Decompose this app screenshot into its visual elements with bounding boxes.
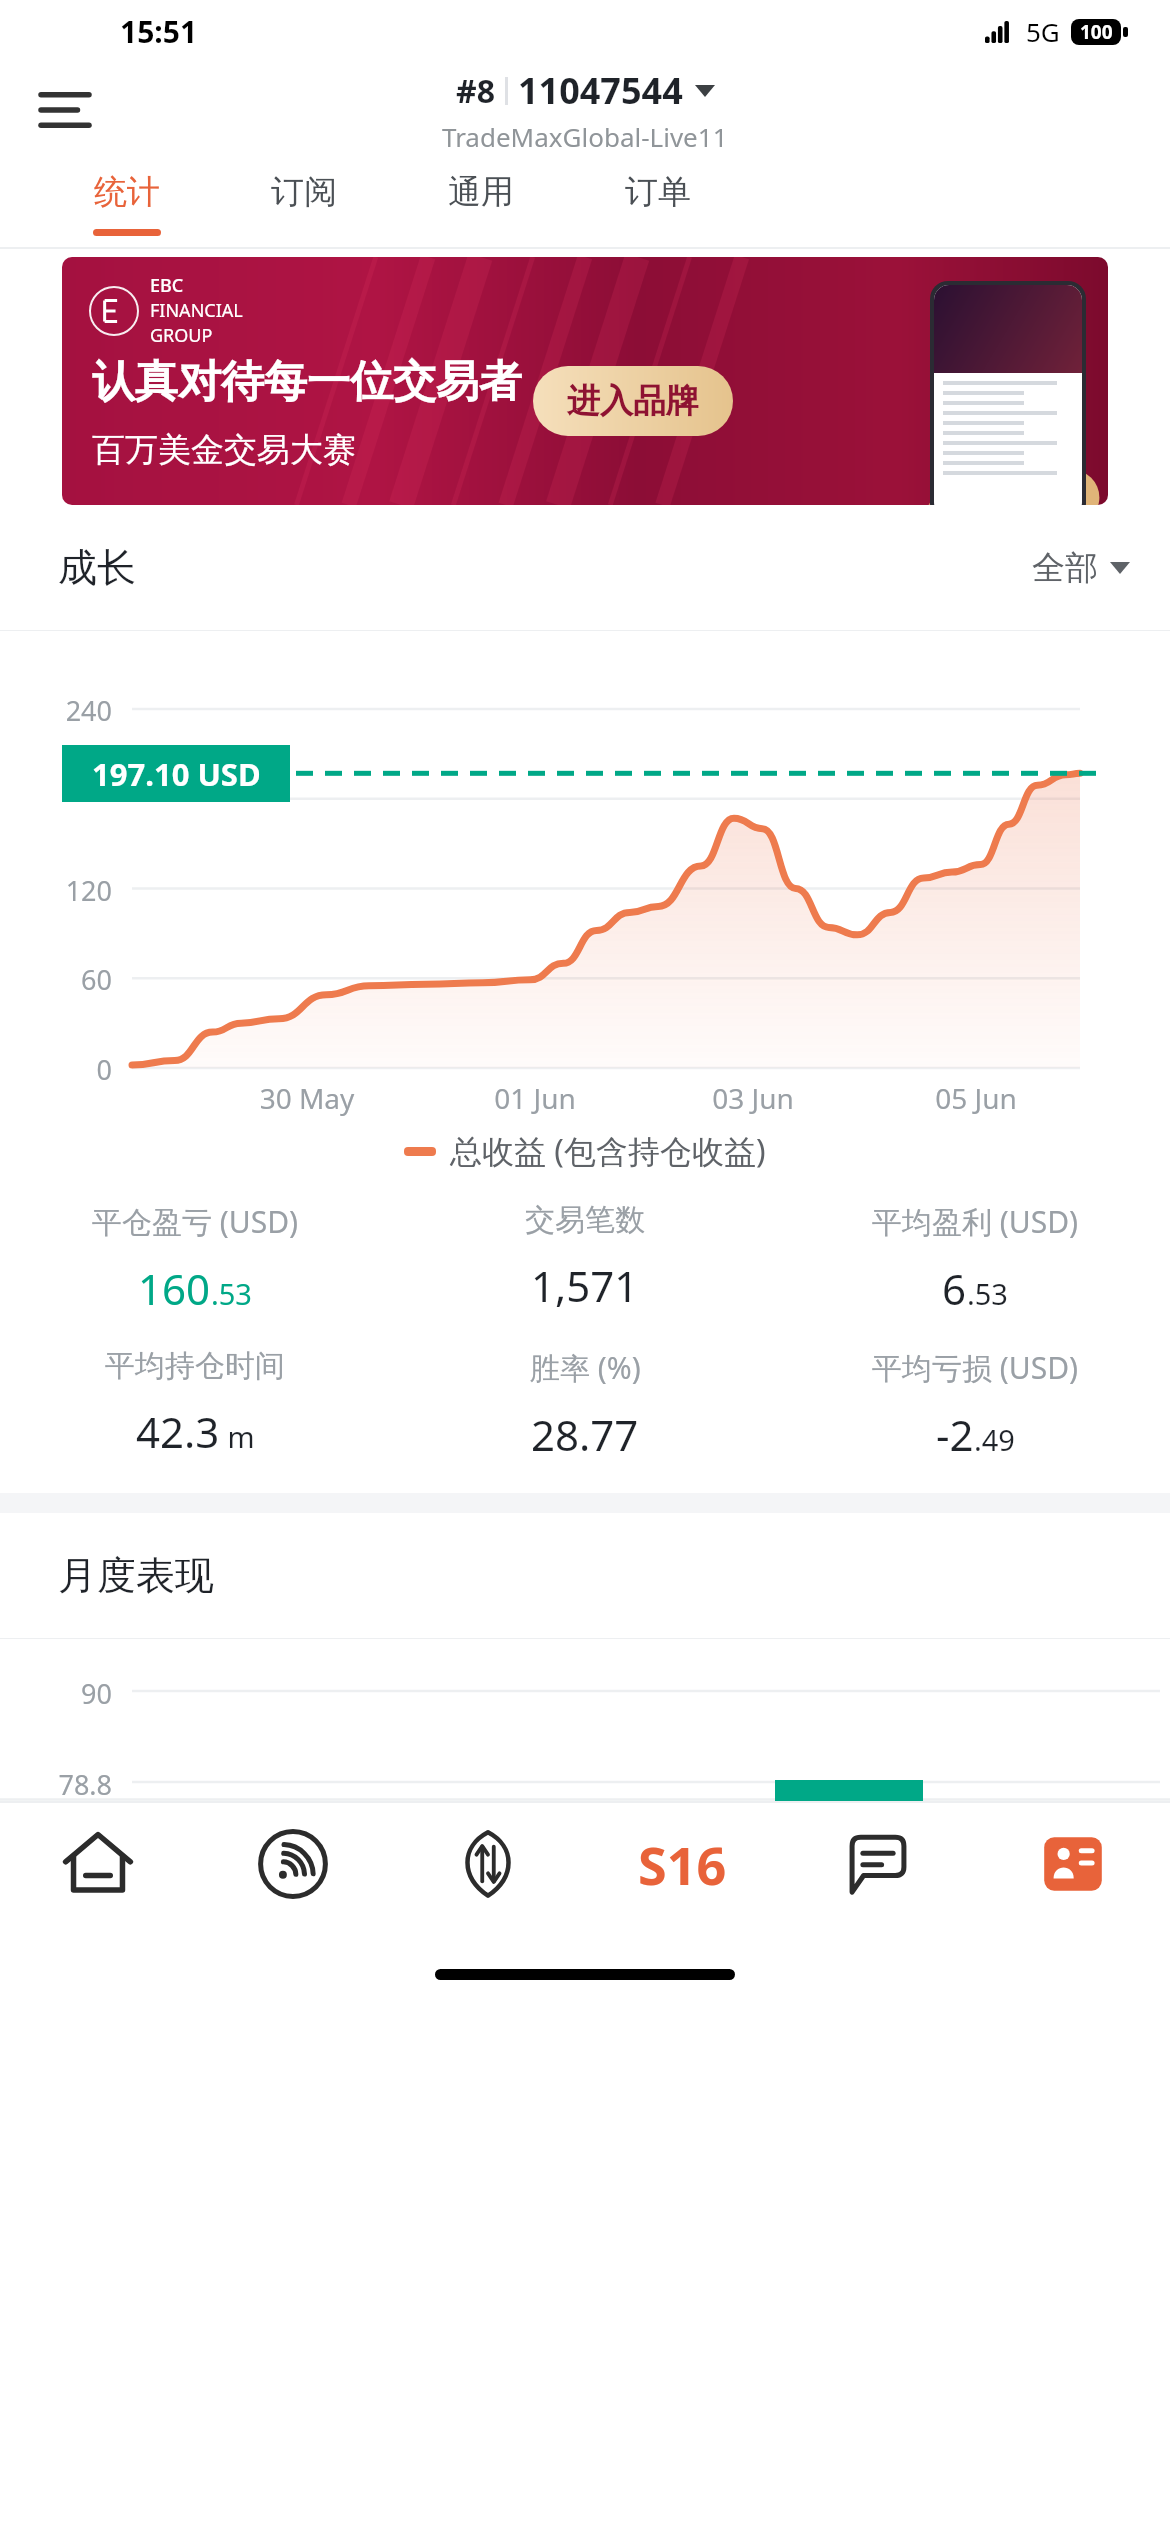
button[interactable]: 全部 <box>1032 547 1130 589</box>
staticText: 160 <box>138 1260 211 1317</box>
button[interactable]: 平均盈利 (USD) <box>780 1201 1170 1317</box>
staticText: 订单 <box>625 171 691 213</box>
button[interactable]: 订单 <box>569 157 746 249</box>
staticText: 30 May <box>237 1079 377 1117</box>
staticText: 03 Jun <box>683 1079 823 1117</box>
staticText: 全部 <box>1032 547 1098 589</box>
staticText: 平均持仓时间 <box>105 1347 285 1385</box>
staticText: GROUP <box>150 323 213 348</box>
staticText: 认真对待每一位交易者 <box>92 355 522 409</box>
button[interactable]: Menu <box>30 75 100 145</box>
button[interactable]: 平仓盈亏 (USD) <box>0 1201 390 1317</box>
staticText: 进入品牌 <box>567 380 699 422</box>
staticText: 05 Jun <box>906 1079 1046 1117</box>
staticText: 平均亏损 (USD) <box>872 1347 1079 1388</box>
staticText: 交易笔数 <box>525 1201 645 1239</box>
button[interactable]: 通用 <box>392 157 569 249</box>
button[interactable]: Home <box>0 1801 195 1951</box>
button[interactable]: 交易笔数 <box>390 1201 780 1314</box>
staticText: 01 Jun <box>465 1079 605 1117</box>
button[interactable]: 平均持仓时间 <box>0 1347 390 1460</box>
staticText: .53 <box>967 1274 1008 1313</box>
staticText: 平仓盈亏 (USD) <box>92 1201 299 1242</box>
staticText: FINANCIAL <box>150 298 243 323</box>
button[interactable]: 进入品牌 <box>533 366 733 436</box>
button[interactable]: 订阅 <box>215 157 392 249</box>
staticText: 120 <box>0 872 112 909</box>
staticText: 通用 <box>448 171 514 213</box>
button[interactable]: S16 <box>585 1801 780 1951</box>
staticText: EBC <box>150 273 184 298</box>
staticText: 11047544 <box>518 66 683 115</box>
staticText: 42.3 <box>136 1403 220 1460</box>
staticText: 胜率 (%) <box>530 1347 641 1388</box>
staticText: 月度表现 <box>58 1551 214 1600</box>
staticText: 240 <box>0 692 112 729</box>
staticText: m <box>220 1417 255 1456</box>
button[interactable]: Trade <box>390 1801 585 1951</box>
button[interactable]: Messages <box>780 1801 975 1951</box>
staticText: TradeMaxGlobal-Live11 <box>442 119 728 154</box>
staticText: 订阅 <box>271 171 337 213</box>
staticText: 5G <box>1026 14 1060 49</box>
staticText: 100 <box>1080 19 1113 45</box>
button[interactable]: #8 <box>442 66 728 154</box>
button[interactable]: 统计 <box>38 157 215 249</box>
staticText: .49 <box>974 1420 1015 1459</box>
staticText: 平均盈利 (USD) <box>872 1201 1079 1242</box>
staticText: S16 <box>638 1829 727 1900</box>
button[interactable]: EBC <box>62 257 1108 505</box>
staticText: 统计 <box>94 171 160 213</box>
staticText: 90 <box>0 1675 112 1712</box>
staticText: 1,571 <box>531 1257 639 1314</box>
staticText: 28.77 <box>531 1406 639 1463</box>
button[interactable]: 胜率 (%) <box>390 1347 780 1463</box>
staticText: -2 <box>936 1406 974 1463</box>
staticText: 0 <box>0 1051 112 1088</box>
button[interactable]: Signals <box>195 1801 390 1951</box>
staticText: 60 <box>0 961 112 998</box>
staticText: #8 <box>456 69 495 113</box>
button[interactable]: 平均亏损 (USD) <box>780 1347 1170 1463</box>
staticText: .53 <box>211 1274 252 1313</box>
button[interactable]: Profile <box>975 1801 1170 1951</box>
staticText: 6 <box>942 1260 967 1317</box>
staticText: 78.8 <box>0 1766 112 1803</box>
staticText: 197.10 USD <box>92 753 261 795</box>
staticText: 百万美金交易大赛 <box>92 429 356 471</box>
staticText: 15:51 <box>120 11 198 52</box>
staticText: 成长 <box>58 543 136 592</box>
staticText: 总收益 (包含持仓收益) <box>450 1129 766 1173</box>
